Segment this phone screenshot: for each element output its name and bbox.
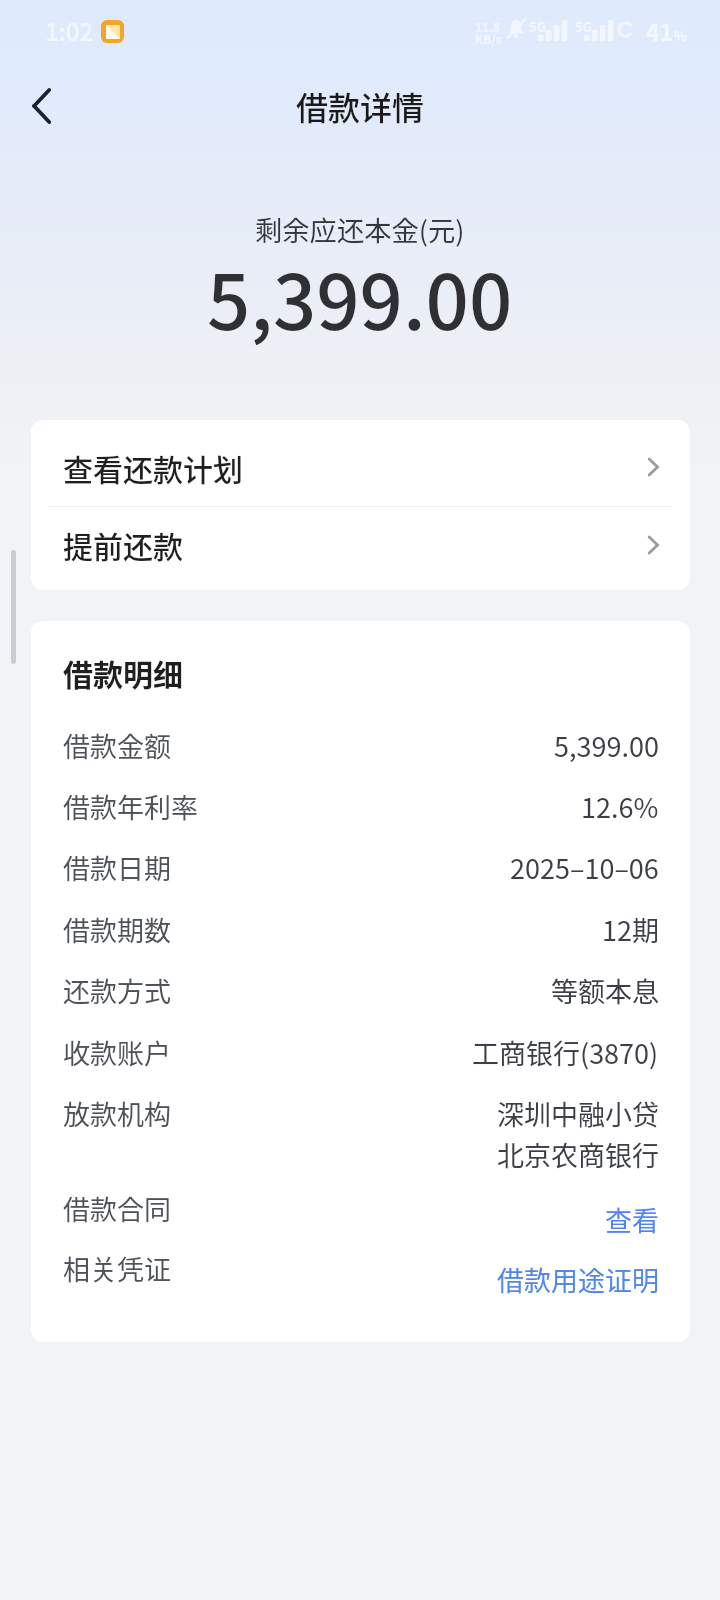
staticText: 工商银行(3870) (472, 1033, 659, 1072)
staticText: 借款合同 (63, 1189, 171, 1228)
staticText: 收款账户 (63, 1033, 171, 1072)
staticText: KB/s (475, 30, 502, 47)
staticText: 等额本息 (551, 971, 659, 1010)
staticText: 11.8 (475, 18, 501, 35)
staticText: 剩余应还本金(元) (255, 209, 465, 249)
button[interactable]: 相关凭证 (31, 1249, 690, 1309)
button[interactable]: Back (10, 74, 74, 138)
staticText: 借款用途证明 (497, 1260, 659, 1299)
staticText: 1:02 (45, 13, 94, 48)
staticText: 41 (646, 14, 674, 47)
staticText: 借款详情 (296, 83, 425, 129)
staticText: 深圳中融小贷 (497, 1094, 659, 1133)
staticText: 5,399.00 (554, 726, 659, 765)
staticText: 相关凭证 (63, 1249, 171, 1288)
staticText: 5G (575, 17, 592, 36)
staticText: 借款金额 (63, 726, 171, 765)
staticText: 借款期数 (63, 910, 171, 949)
staticText: 查看还款计划 (63, 446, 243, 489)
button[interactable]: 提前还款 (31, 507, 690, 590)
staticText: 查看 (605, 1200, 659, 1239)
staticText: 12.6% (581, 787, 659, 826)
staticText: 借款年利率 (63, 787, 198, 826)
staticText: 借款明细 (63, 651, 183, 694)
staticText: 提前还款 (63, 523, 183, 566)
staticText: 5G (529, 17, 546, 36)
button[interactable]: 查看还款计划 (31, 420, 690, 506)
staticText: 借款日期 (63, 848, 171, 887)
staticText: 2025–10–06 (510, 848, 659, 887)
staticText: 北京农商银行 (497, 1135, 659, 1174)
button[interactable]: 借款合同 (31, 1189, 690, 1249)
staticText: 12期 (602, 910, 659, 949)
staticText: % (674, 26, 687, 45)
staticText: 5,399.00 (207, 242, 513, 352)
staticText: 还款方式 (63, 971, 171, 1010)
staticText: 放款机构 (63, 1094, 171, 1133)
